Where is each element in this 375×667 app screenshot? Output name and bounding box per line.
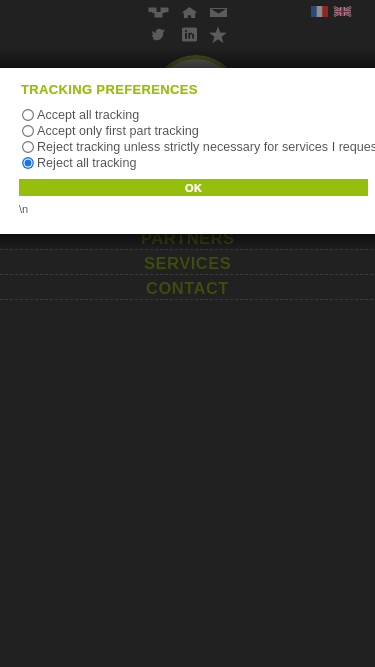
- staticText: Reject tracking unless strictly necessar…: [37, 140, 375, 154]
- button[interactable]: Accept all tracking: [0, 107, 375, 123]
- button[interactable]: CONTACT: [0, 275, 375, 300]
- button[interactable]: Favourite: [207, 26, 229, 44]
- staticText: HOME: [162, 178, 214, 196]
- staticText: Accept only first part tracking: [37, 124, 199, 138]
- button[interactable]: Français: [311, 6, 328, 17]
- button[interactable]: HOME: [0, 174, 375, 199]
- button[interactable]: Accept only first part tracking: [0, 123, 375, 139]
- button[interactable]: Logo: [151, 55, 241, 145]
- staticText: CONTACT: [146, 279, 229, 297]
- button[interactable]: OK: [19, 179, 368, 196]
- button[interactable]: LinkedIn: [180, 26, 199, 43]
- button[interactable]: Twitter: [149, 26, 169, 43]
- staticText: PARTNERS: [141, 229, 235, 247]
- button[interactable]: Reject all tracking: [0, 155, 375, 171]
- staticText: Reject all tracking: [37, 156, 137, 170]
- staticText: SERVICES: [144, 254, 232, 272]
- button[interactable]: Home: [179, 5, 200, 20]
- button[interactable]: PARTNERS: [0, 225, 375, 250]
- button[interactable]: SERVICES: [0, 250, 375, 275]
- button[interactable]: Reject tracking unless strictly necessar…: [0, 139, 375, 155]
- button[interactable]: English: [334, 7, 351, 16]
- staticText: TRACKING PREFERENCES: [21, 82, 198, 97]
- button[interactable]: ABOUT: [0, 199, 375, 224]
- button[interactable]: Email: [208, 5, 229, 20]
- staticText: Accept all tracking: [37, 108, 140, 122]
- button[interactable]: Site map: [146, 5, 171, 20]
- staticText: \n: [19, 203, 29, 215]
- staticText: OK: [185, 182, 203, 194]
